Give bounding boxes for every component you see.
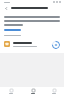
button[interactable]: Download progress: [0, 38, 64, 50]
button[interactable]: [4, 29, 21, 31]
button[interactable]: Download progress: [51, 40, 60, 49]
button[interactable]: Back: [3, 5, 9, 11]
button[interactable]: Games: [0, 87, 22, 96]
button[interactable]: Library: [43, 87, 64, 96]
button[interactable]: [11, 4, 61, 12]
button[interactable]: Apps: [22, 87, 43, 96]
